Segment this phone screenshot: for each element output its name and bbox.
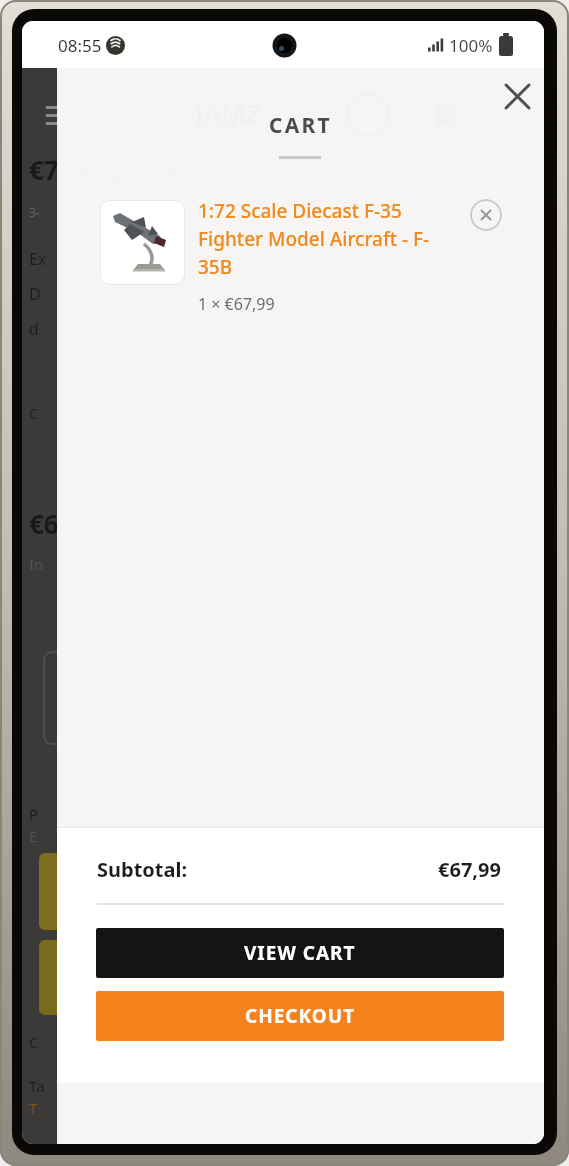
staticText: C — [29, 1032, 39, 1052]
staticText: 08:55 — [58, 34, 102, 57]
staticText: E — [29, 826, 38, 846]
staticText: Ta — [29, 1076, 45, 1096]
button[interactable]: VIEW CART — [96, 928, 504, 978]
staticText: Ex — [29, 248, 47, 270]
staticText: €7 — [29, 152, 59, 187]
staticText: €6 — [29, 506, 59, 541]
staticText: CART — [269, 111, 332, 140]
staticText: €67,99 — [438, 856, 501, 883]
button[interactable] — [100, 200, 185, 285]
staticText: 1:72 Scale Diecast F-35 Fighter Model Ai… — [198, 198, 430, 280]
staticText: C — [29, 403, 39, 423]
staticText: T — [29, 1098, 38, 1118]
staticText: 1 × €67,99 — [198, 293, 275, 315]
staticText: VIEW CART — [244, 940, 356, 966]
button[interactable] — [470, 199, 502, 231]
staticText: d — [29, 318, 39, 340]
staticText: P — [29, 804, 39, 824]
staticText: 100% — [449, 34, 493, 57]
staticText: In — [29, 554, 44, 574]
staticText: CHECKOUT — [245, 1003, 356, 1029]
staticText: 3- — [29, 204, 40, 220]
staticText: D — [29, 283, 41, 305]
button[interactable]: CHECKOUT — [96, 991, 504, 1041]
button[interactable] — [497, 76, 537, 116]
button[interactable]: 1:72 Scale Diecast F-35 Fighter Model Ai… — [198, 198, 478, 280]
staticText: Subtotal: — [97, 856, 188, 883]
